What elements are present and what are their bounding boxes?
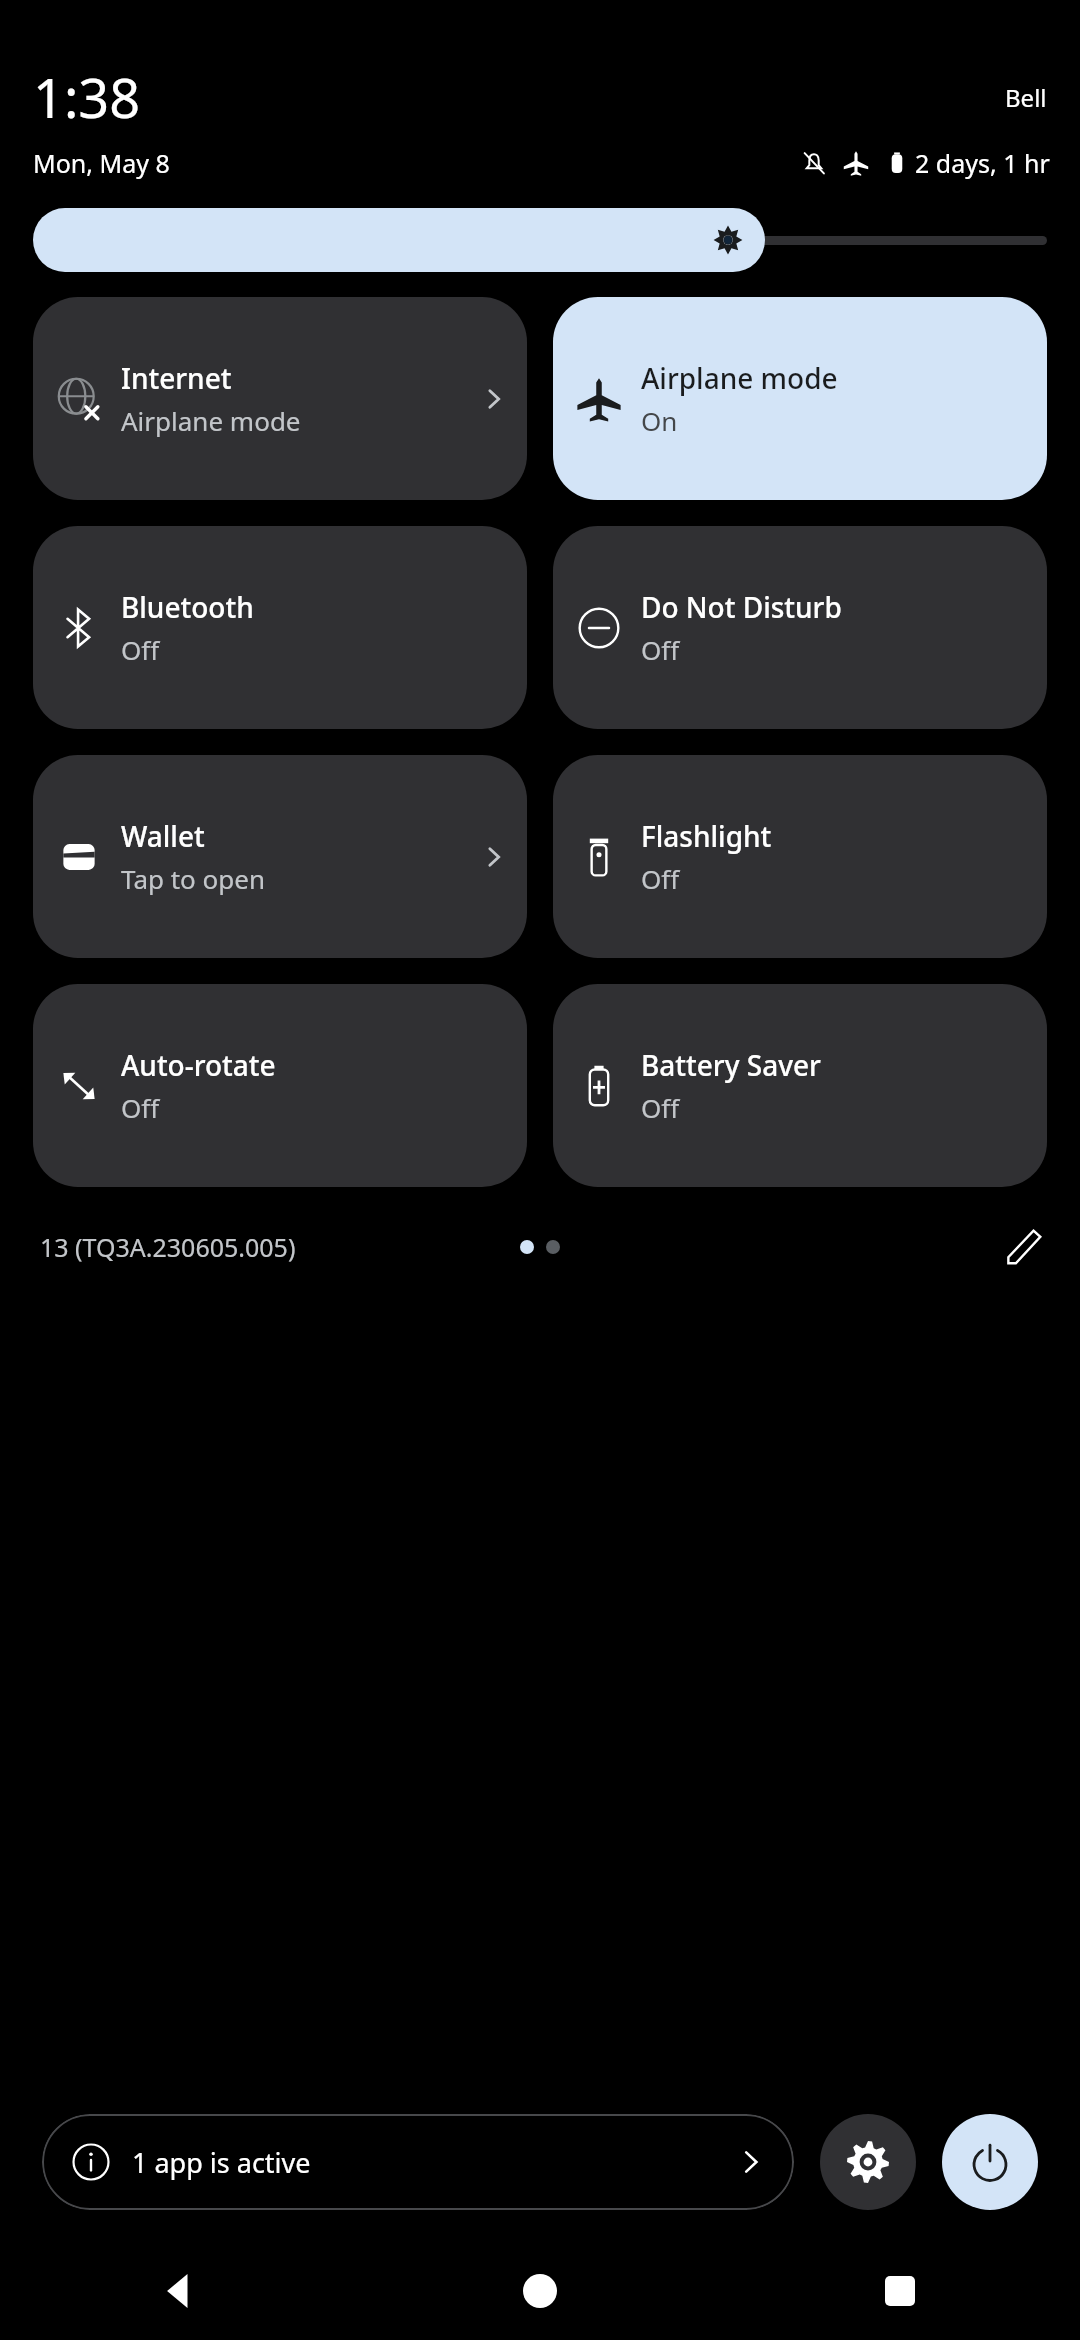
- staticText: Wallet: [121, 817, 205, 855]
- staticText: Bell: [1005, 81, 1047, 114]
- staticText: On: [641, 403, 678, 438]
- button[interactable]: Do Not Disturb: [553, 526, 1047, 729]
- staticText: Bluetooth: [121, 588, 254, 626]
- staticText: Mon, May 8: [33, 146, 170, 180]
- button[interactable]: Edit tiles: [996, 1219, 1052, 1275]
- button[interactable]: Bluetooth: [33, 526, 527, 729]
- button[interactable]: Settings: [820, 2114, 916, 2210]
- staticText: Off: [641, 632, 680, 667]
- button[interactable]: Brightness: [33, 208, 1047, 272]
- button[interactable]: Flashlight: [553, 755, 1047, 958]
- button[interactable]: Battery Saver: [553, 984, 1047, 1187]
- button[interactable]: Airplane mode: [553, 297, 1047, 500]
- button[interactable]: Power: [942, 2114, 1038, 2210]
- staticText: 1:38: [33, 60, 141, 134]
- button[interactable]: Auto-rotate: [33, 984, 527, 1187]
- button[interactable]: Recents: [720, 2246, 1080, 2336]
- staticText: Off: [641, 1090, 680, 1125]
- staticText: 13 (TQ3A.230605.005): [40, 1230, 296, 1264]
- button[interactable]: Back: [0, 2246, 360, 2336]
- button[interactable]: Home: [360, 2246, 720, 2336]
- staticText: Airplane mode: [121, 403, 301, 438]
- staticText: Off: [121, 1090, 160, 1125]
- button[interactable]: 1 app is active: [42, 2114, 794, 2210]
- staticText: Off: [121, 632, 160, 667]
- button[interactable]: Internet: [33, 297, 527, 500]
- staticText: Internet: [121, 359, 232, 397]
- staticText: 2 days, 1 hr: [915, 146, 1050, 180]
- staticText: Do Not Disturb: [641, 588, 842, 626]
- staticText: Off: [641, 861, 680, 896]
- button[interactable]: Wallet: [33, 755, 527, 958]
- staticText: Flashlight: [641, 817, 772, 855]
- staticText: Auto-rotate: [121, 1046, 276, 1084]
- staticText: Tap to open: [121, 861, 266, 896]
- staticText: Battery Saver: [641, 1046, 821, 1084]
- staticText: 1 app is active: [132, 2144, 311, 2181]
- staticText: Airplane mode: [641, 359, 838, 397]
